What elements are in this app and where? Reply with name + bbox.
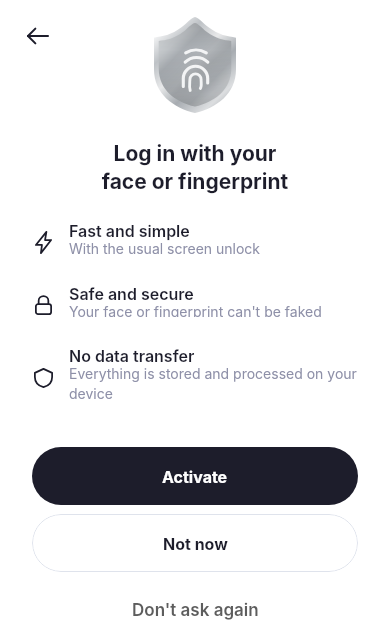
- staticText: Safe and secure: [69, 284, 194, 303]
- staticText: Your face or fingerprint can't be faked: [69, 303, 322, 317]
- button[interactable]: Activate: [32, 447, 358, 505]
- staticText: Don't ask again: [132, 600, 259, 621]
- staticText: Fast and simple: [69, 221, 190, 240]
- button[interactable]: Not now: [32, 514, 358, 572]
- staticText: Activate: [162, 467, 228, 486]
- staticText: Not now: [163, 534, 228, 553]
- button[interactable]: Back: [15, 13, 60, 58]
- staticText: No data transfer: [69, 346, 195, 365]
- staticText: With the usual screen unlock: [69, 240, 261, 254]
- staticText: Everything is stored and processed on yo…: [69, 365, 360, 400]
- staticText: Log in with your face or fingerprint: [0, 141, 390, 194]
- button[interactable]: Don't ask again: [32, 592, 358, 628]
